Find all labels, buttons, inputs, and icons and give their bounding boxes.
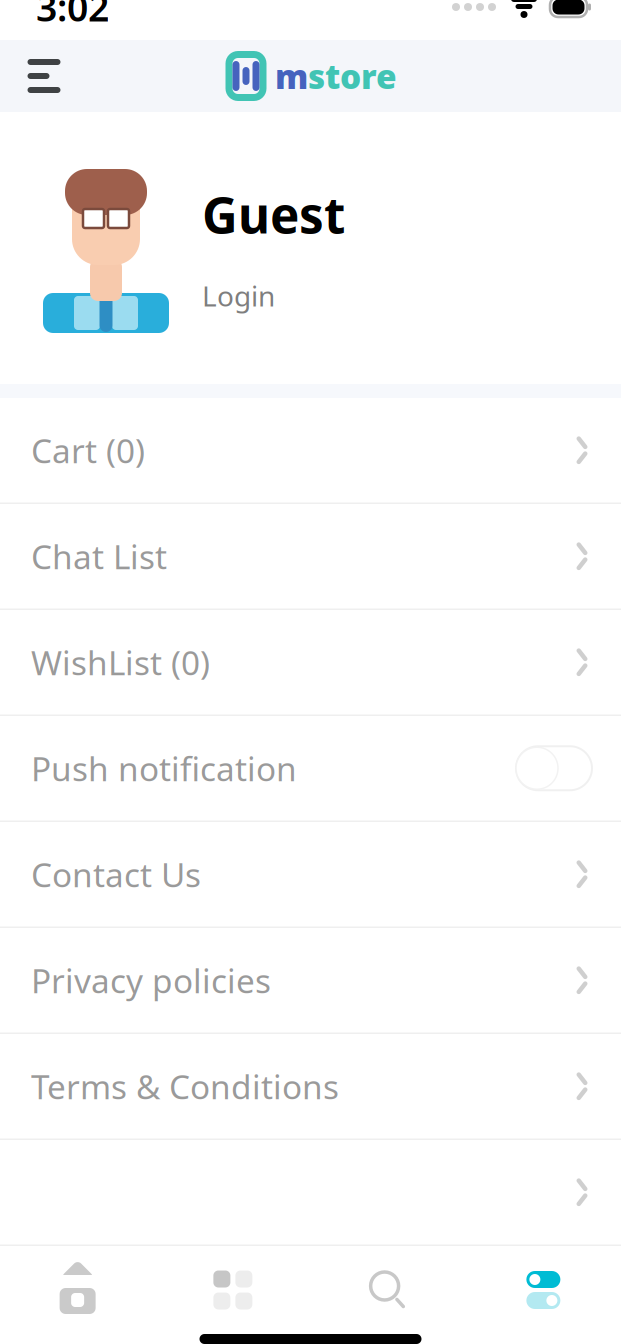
button[interactable]: Terms & Conditions [0,1034,621,1138]
button[interactable]: Categories [155,1250,310,1330]
button[interactable]: Settings [466,1250,621,1330]
staticText: WishList (0) [31,640,210,684]
staticText: Privacy policies [31,958,271,1002]
button[interactable]: Menu [14,40,74,112]
staticText: Guest [202,182,345,247]
button[interactable]: Push notification [0,716,621,820]
button[interactable]: Login [202,277,275,314]
button[interactable]: Chat List [0,504,621,608]
staticText: Cart (0) [31,428,145,472]
staticText: Push notification [31,746,297,790]
staticText: store [308,54,397,98]
button[interactable]: WishList (0) [0,610,621,714]
button[interactable]: mstore [224,51,397,101]
button[interactable]: Cart (0) [0,398,621,502]
staticText: m [275,54,308,98]
staticText: Terms & Conditions [31,1064,339,1108]
staticText: Chat List [31,534,167,578]
button[interactable]: Contact Us [0,822,621,926]
staticText: 3:02 [36,0,109,32]
button[interactable]: Home [0,1250,155,1330]
button[interactable]: Search [310,1250,466,1330]
staticText: Contact Us [31,852,201,896]
staticText: Login [202,277,275,314]
button[interactable]: Privacy policies [0,928,621,1032]
